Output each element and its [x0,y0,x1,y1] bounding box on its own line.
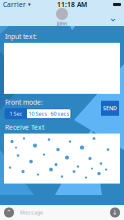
staticText: 60 secs [50,110,69,117]
staticText: 11:18 AM [57,0,87,9]
staticText: ▾ [26,1,31,8]
staticText: Receive Text [5,123,44,132]
button[interactable]: App drawer [2,205,16,219]
staticText: Carrier [3,0,26,9]
button[interactable]: SEND [101,101,119,116]
button[interactable]: 1 Sec [5,109,27,119]
staticText: ⌃ [6,209,12,216]
staticText: 1 Sec [9,110,22,117]
staticText: Message [20,209,43,216]
button[interactable]: Show details [107,11,119,23]
staticText: ⌄ [108,11,117,23]
staticText: Front mode: [5,98,43,107]
staticText: Input text: [5,32,37,41]
button[interactable]: 10 Secs [27,109,49,119]
staticText: 10 Secs [28,110,47,117]
button[interactable]: 60 secs [49,109,71,119]
staticText: John [57,20,67,27]
staticText: ↓ [112,209,118,216]
staticText: SEND [103,105,117,112]
button[interactable]: Record audio [108,205,122,219]
